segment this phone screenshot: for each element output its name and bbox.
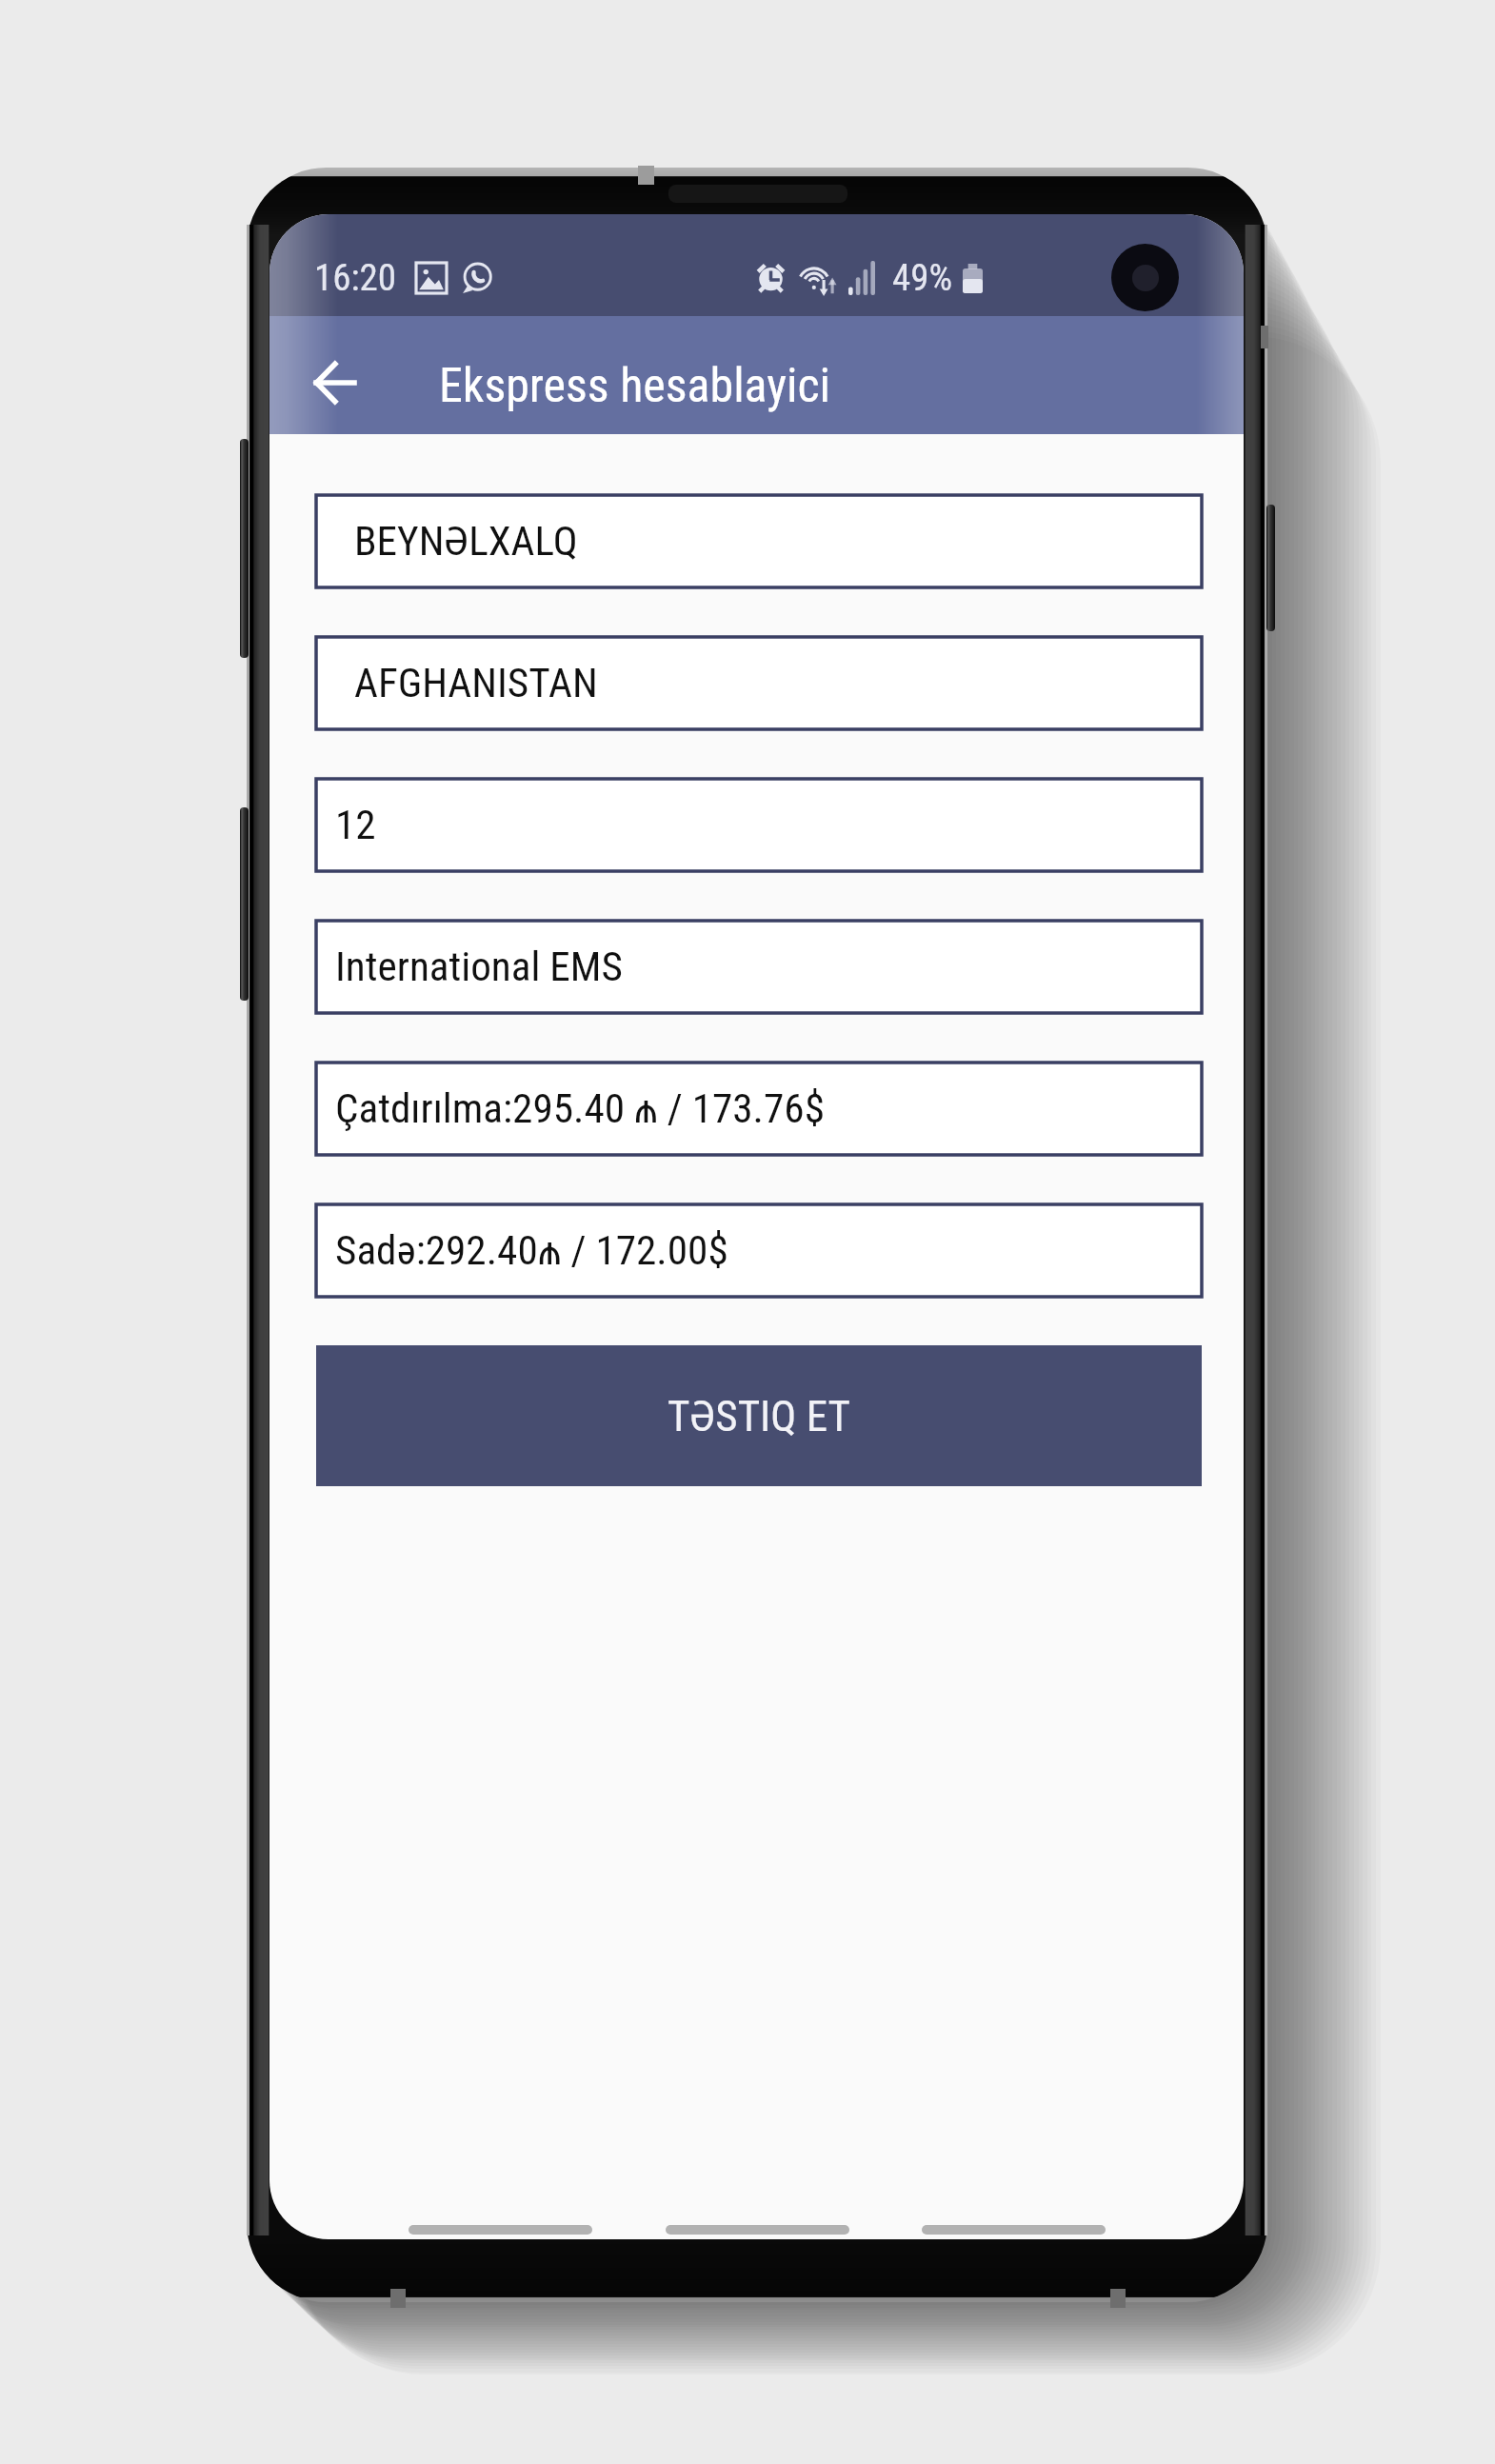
staticText: AFGHANISTAN xyxy=(354,659,598,707)
button[interactable]: Navigation xyxy=(922,2225,1106,2235)
button[interactable]: AFGHANISTAN xyxy=(316,637,1202,729)
staticText: TƏSTIQ ET xyxy=(668,1391,850,1441)
staticText: Sadə:292.40₼ / 172.00$ xyxy=(335,1226,728,1275)
button[interactable]: Back xyxy=(291,340,377,426)
staticText: BEYNƏLXALQ xyxy=(354,517,578,566)
button[interactable]: 12 xyxy=(316,779,1202,871)
staticText: 49% xyxy=(892,256,953,300)
staticText: Ekspress hesablayici xyxy=(439,358,831,414)
button[interactable]: Sadə:292.40₼ / 172.00$ xyxy=(316,1204,1202,1297)
staticText: Çatdırılma:295.40 ₼ / 173.76$ xyxy=(335,1084,825,1133)
button[interactable]: TƏSTIQ ET xyxy=(316,1345,1202,1486)
staticText: 12 xyxy=(335,801,376,849)
button[interactable]: Çatdırılma:295.40 ₼ / 173.76$ xyxy=(316,1063,1202,1155)
staticText: 16:20 xyxy=(314,256,397,300)
button[interactable]: Navigation xyxy=(666,2225,849,2235)
button[interactable]: International EMS xyxy=(316,921,1202,1013)
button[interactable]: Navigation xyxy=(409,2225,592,2235)
staticText: International EMS xyxy=(335,943,623,991)
button[interactable]: BEYNƏLXALQ xyxy=(316,495,1202,587)
